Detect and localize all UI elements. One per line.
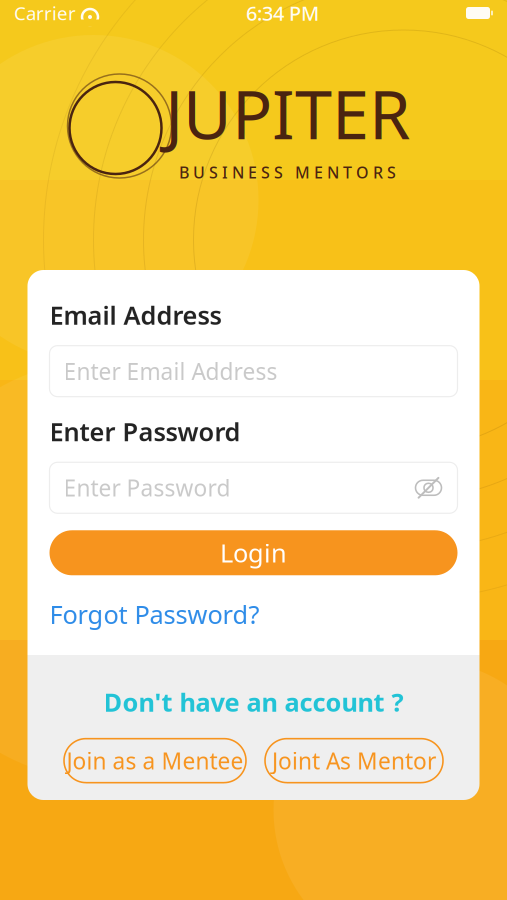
button[interactable]: Join as a Mentee (64, 739, 246, 783)
staticText: Enter Password (63, 473, 230, 503)
staticText: Enter Password (49, 415, 240, 448)
staticText: Login (220, 536, 287, 570)
staticText: Join as a Mentee (66, 746, 243, 776)
button[interactable]: Forgot Password? (49, 591, 259, 637)
staticText: Enter Email Address (63, 356, 277, 386)
staticText: Carrier (14, 1, 76, 25)
staticText: Don't have an account ? (103, 685, 403, 719)
staticText: Forgot Password? (49, 597, 259, 631)
staticText: B U S I N E S S M E N T O R S (179, 162, 396, 183)
button[interactable]: Joint As Mentor (265, 739, 443, 783)
staticText: Email Address (49, 298, 221, 332)
button[interactable]: Login (49, 530, 457, 575)
staticText: Joint As Mentor (272, 746, 436, 776)
staticText: JUPITER (165, 69, 410, 158)
staticText: 6:34 PM (246, 0, 319, 26)
